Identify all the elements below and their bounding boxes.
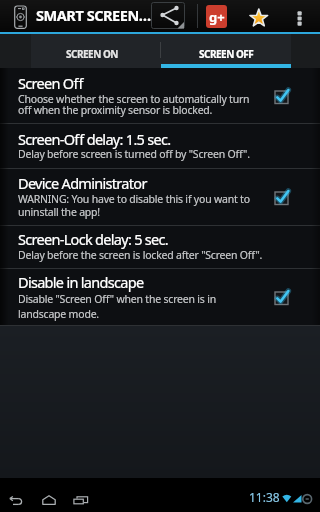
button[interactable]: g+ bbox=[206, 5, 227, 28]
button[interactable] bbox=[274, 289, 291, 306]
staticText: Screen-Lock delay: 5 sec. bbox=[18, 229, 169, 249]
button[interactable] bbox=[295, 11, 305, 27]
button[interactable]: SCREEN OFF bbox=[161, 34, 291, 68]
button[interactable] bbox=[0, 68, 320, 122]
staticText: Choose whether the screen to automatical… bbox=[18, 92, 250, 106]
button[interactable]: SCREEN ON bbox=[31, 34, 161, 68]
button[interactable] bbox=[0, 124, 320, 168]
staticText: SCREEN OFF bbox=[199, 47, 254, 61]
staticText: Device Administrator bbox=[18, 173, 147, 193]
staticText: landscape mode. bbox=[18, 307, 99, 321]
staticText: WARNING: You have to disable this if you… bbox=[18, 192, 250, 206]
staticText: g+ bbox=[209, 8, 225, 26]
staticText: 11:38 bbox=[249, 489, 280, 505]
staticText: Screen-Off delay: 1.5 sec. bbox=[18, 129, 171, 149]
button[interactable] bbox=[151, 2, 185, 29]
staticText: uninstall the app! bbox=[18, 205, 100, 219]
staticText: Delay before screen is turned off by "Sc… bbox=[18, 147, 250, 161]
button[interactable] bbox=[274, 189, 291, 206]
button[interactable] bbox=[42, 495, 56, 505]
staticText: Screen Off bbox=[18, 73, 83, 93]
staticText: SCREEN ON bbox=[66, 47, 118, 61]
staticText: Disable "Screen Off" when the screen is … bbox=[18, 292, 216, 306]
staticText: off when the proximity sensor is blocked… bbox=[18, 103, 213, 117]
staticText: SMART SCREEN… bbox=[36, 5, 151, 25]
button[interactable] bbox=[9, 496, 24, 506]
button[interactable] bbox=[0, 169, 320, 224]
button[interactable] bbox=[274, 88, 291, 105]
button[interactable] bbox=[249, 9, 269, 28]
staticText: Disable in landscape bbox=[18, 272, 144, 292]
button[interactable] bbox=[0, 268, 320, 324]
staticText: Delay before the screen is locked after … bbox=[18, 248, 263, 262]
button[interactable] bbox=[73, 496, 89, 506]
button[interactable] bbox=[0, 226, 320, 267]
